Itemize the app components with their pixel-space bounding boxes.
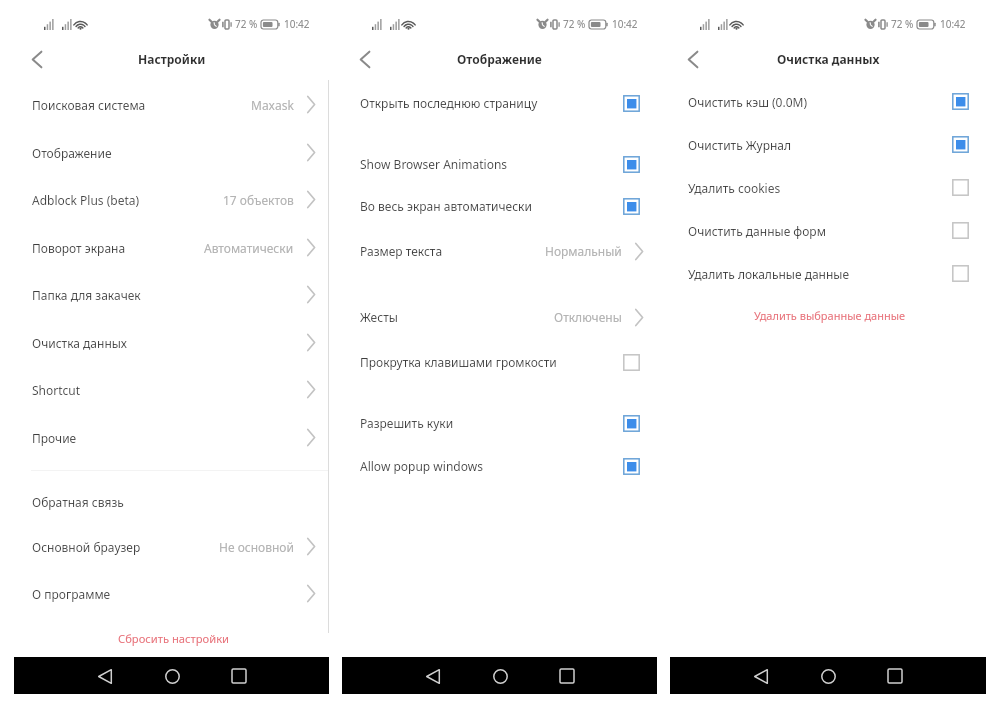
staticText: Очистка данных — [32, 335, 128, 351]
staticText: Поисковая система — [32, 97, 146, 113]
staticText: Автоматически — [204, 240, 294, 256]
button[interactable]: Back — [88, 659, 122, 693]
staticText: Отключены — [554, 309, 622, 325]
button[interactable]: Home — [155, 659, 189, 693]
staticText: Не основной — [219, 539, 294, 555]
button[interactable]: Поисковая система — [14, 81, 329, 128]
staticText: Show Browser Animations — [360, 156, 508, 172]
button[interactable]: Home — [811, 659, 845, 693]
button[interactable]: Обратная связь — [14, 478, 329, 525]
staticText: 10:42 — [284, 17, 310, 31]
button[interactable]: Удалить выбранные данные — [672, 302, 988, 328]
button[interactable]: Back — [348, 44, 382, 74]
button[interactable]: Home — [483, 659, 517, 693]
button[interactable]: Открыть последнюю страницу — [342, 81, 657, 125]
button[interactable]: Отображение — [14, 129, 329, 176]
button[interactable]: Жесты — [342, 295, 657, 339]
staticText: Жесты — [360, 309, 398, 325]
button[interactable]: Recents — [550, 659, 584, 693]
button[interactable]: Allow popup windows — [342, 444, 657, 488]
button[interactable]: Back — [676, 44, 710, 74]
button[interactable]: Прокрутка клавишами громкости — [342, 340, 657, 384]
staticText: Открыть последнюю страницу — [360, 95, 538, 111]
staticText: Удалить локальные данные — [688, 266, 850, 282]
staticText: Размер текста — [360, 243, 443, 259]
button[interactable]: Очистить данные форм — [670, 209, 986, 252]
staticText: Очистка данных — [777, 51, 880, 67]
button[interactable]: Удалить локальные данные — [670, 252, 986, 295]
button[interactable]: Очистить Журнал — [670, 123, 986, 166]
staticText: Очистить кэш (0.0M) — [688, 94, 808, 110]
staticText: Основной браузер — [32, 539, 141, 555]
staticText: Прочие — [32, 430, 77, 446]
staticText: Сбросить настройки — [118, 631, 230, 646]
button[interactable]: Adblock Plus (beta) — [14, 176, 329, 223]
staticText: Во весь экран автоматически — [360, 198, 532, 214]
staticText: Отображение — [32, 145, 112, 161]
button[interactable]: Recents — [222, 659, 256, 693]
staticText: 72 % — [891, 17, 914, 31]
staticText: Удалить cookies — [688, 180, 781, 196]
staticText: Обратная связь — [32, 494, 124, 510]
button[interactable]: Разрешить куки — [342, 401, 657, 445]
staticText: Отображение — [457, 51, 542, 67]
button[interactable]: Back — [416, 659, 450, 693]
staticText: Разрешить куки — [360, 415, 454, 431]
button[interactable]: Очистка данных — [14, 319, 329, 366]
button[interactable]: О программе — [14, 570, 329, 617]
button[interactable]: Back — [744, 659, 778, 693]
button[interactable]: Сбросить настройки — [16, 625, 331, 651]
button[interactable]: Поворот экрана — [14, 224, 329, 271]
button[interactable]: Размер текста — [342, 229, 657, 273]
staticText: О программе — [32, 586, 111, 602]
staticText: Adblock Plus (beta) — [32, 192, 140, 208]
button[interactable]: Back — [20, 44, 54, 74]
staticText: 17 объектов — [223, 192, 294, 208]
staticText: 10:42 — [612, 17, 638, 31]
staticText: Shortcut — [32, 382, 81, 398]
staticText: Прокрутка клавишами громкости — [360, 354, 557, 370]
staticText: Очистить Журнал — [688, 137, 792, 153]
staticText: Поворот экрана — [32, 240, 126, 256]
staticText: 72 % — [235, 17, 258, 31]
staticText: Удалить выбранные данные — [754, 308, 906, 323]
button[interactable]: Папка для закачек — [14, 271, 329, 318]
button[interactable]: Во весь экран автоматически — [342, 184, 657, 228]
staticText: 10:42 — [940, 17, 966, 31]
button[interactable]: Очистить кэш (0.0M) — [670, 80, 986, 123]
button[interactable]: Удалить cookies — [670, 166, 986, 209]
staticText: 72 % — [563, 17, 586, 31]
staticText: Очистить данные форм — [688, 223, 826, 239]
button[interactable]: Прочие — [14, 414, 329, 461]
staticText: Allow popup windows — [360, 458, 483, 474]
button[interactable]: Shortcut — [14, 366, 329, 413]
staticText: Maxask — [251, 97, 294, 113]
staticText: Нормальный — [545, 243, 622, 259]
staticText: Папка для закачек — [32, 287, 141, 303]
button[interactable]: Основной браузер — [14, 523, 329, 570]
button[interactable]: Show Browser Animations — [342, 142, 657, 186]
staticText: Настройки — [138, 51, 206, 67]
button[interactable]: Recents — [878, 659, 912, 693]
